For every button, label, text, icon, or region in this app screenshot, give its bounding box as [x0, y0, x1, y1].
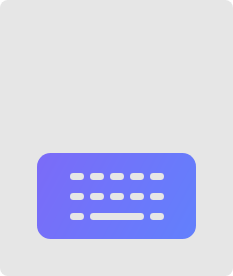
button[interactable]: Keyboard [37, 153, 196, 239]
